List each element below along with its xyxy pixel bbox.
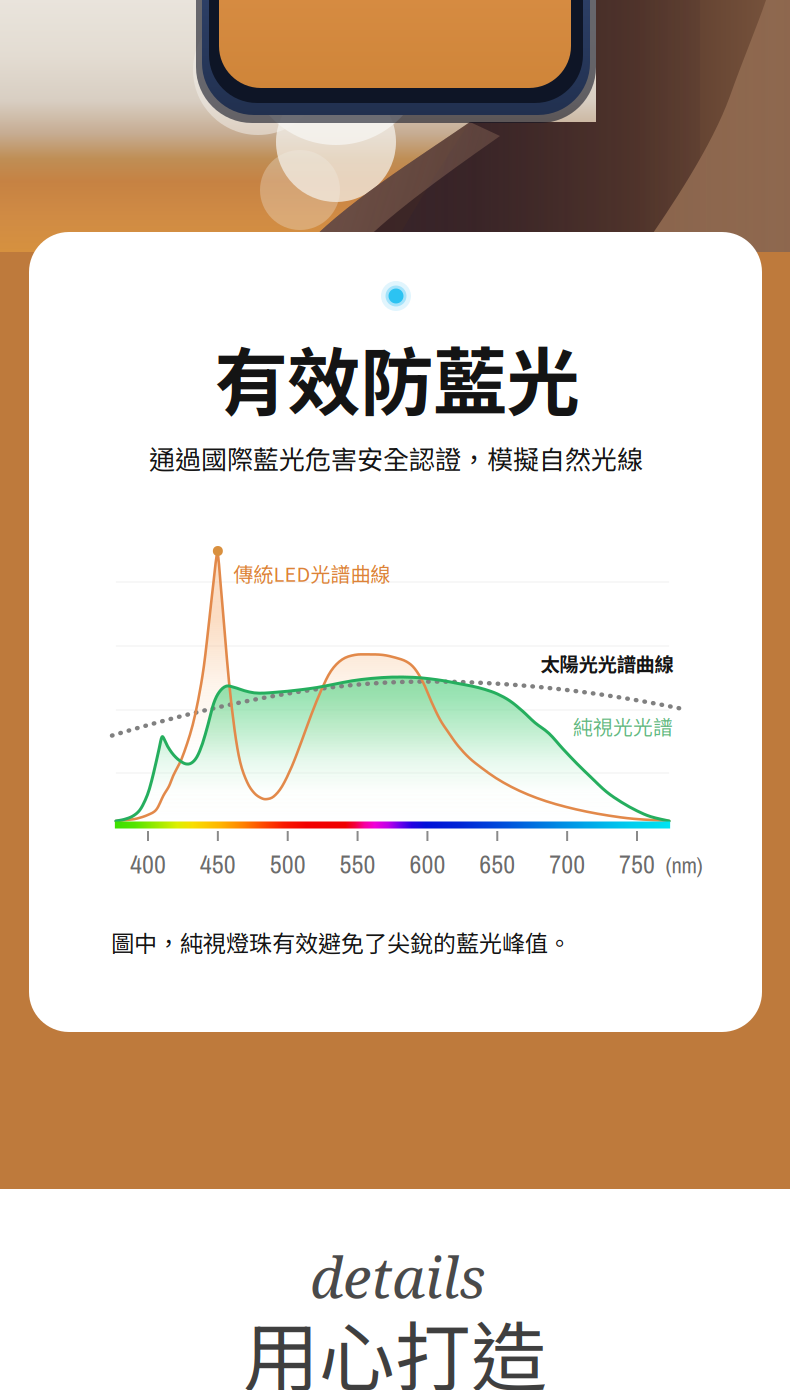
staticText: 550 [340,846,376,881]
staticText: 通過國際藍光危害安全認證，模擬自然光線 [149,439,643,477]
staticText: 太陽光光譜曲線 [540,649,673,677]
staticText: 傳統LED光譜曲線 [233,558,390,587]
staticText: 600 [409,846,445,881]
staticText: 650 [479,846,515,881]
staticText: 純視光光譜 [573,712,673,740]
staticText: 500 [270,846,306,881]
staticText: 400 [130,846,166,881]
staticText: 450 [200,846,236,881]
staticText: 圖中，純視燈珠有效避免了尖銳的藍光峰值。 [111,925,571,959]
staticText: 有效防藍光 [214,324,579,430]
staticText: (nm) [665,850,702,880]
staticText: 700 [549,846,585,881]
staticText: details [310,1237,486,1315]
staticText: 用心打造 [243,1297,547,1390]
staticText: 750 [619,846,655,881]
